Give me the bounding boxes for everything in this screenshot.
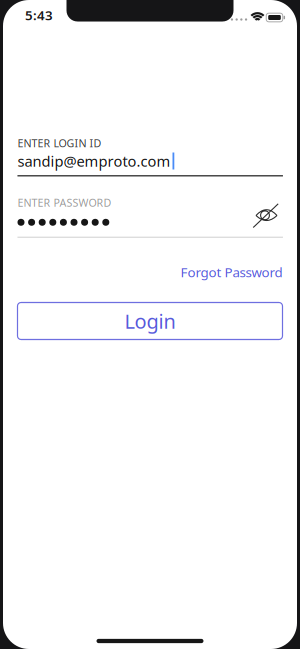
staticText: ENTER PASSWORD [17,195,111,210]
staticText: Login [124,308,175,334]
button[interactable]: Login [17,302,282,339]
button[interactable] [17,219,247,226]
button[interactable] [250,200,281,231]
staticText: ENTER LOGIN ID [17,136,101,150]
staticText: 5:43 [25,6,53,24]
button[interactable]: sandip@emproto.com [17,151,282,171]
staticText: sandip@emproto.com [17,151,170,171]
button[interactable]: Forgot Password [17,263,282,281]
staticText: Forgot Password [180,263,282,281]
